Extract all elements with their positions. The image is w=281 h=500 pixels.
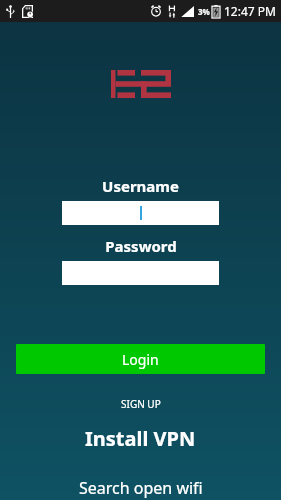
button[interactable]: Install VPN — [73, 423, 208, 454]
other: App logo — [111, 70, 171, 98]
staticText: 3% — [198, 6, 210, 17]
button[interactable]: SIGN UP — [109, 395, 173, 413]
button[interactable] — [62, 201, 219, 225]
staticText: Login — [122, 350, 159, 369]
staticText: Install VPN — [85, 425, 196, 452]
staticText: Search open wifi — [79, 477, 203, 499]
staticText: Username — [102, 176, 179, 196]
button[interactable]: Search open wifi — [67, 475, 215, 500]
staticText: SIGN UP — [121, 397, 161, 411]
staticText: Password — [105, 236, 177, 256]
button[interactable]: Login — [16, 344, 265, 374]
staticText: 12:47 PM — [224, 3, 276, 19]
